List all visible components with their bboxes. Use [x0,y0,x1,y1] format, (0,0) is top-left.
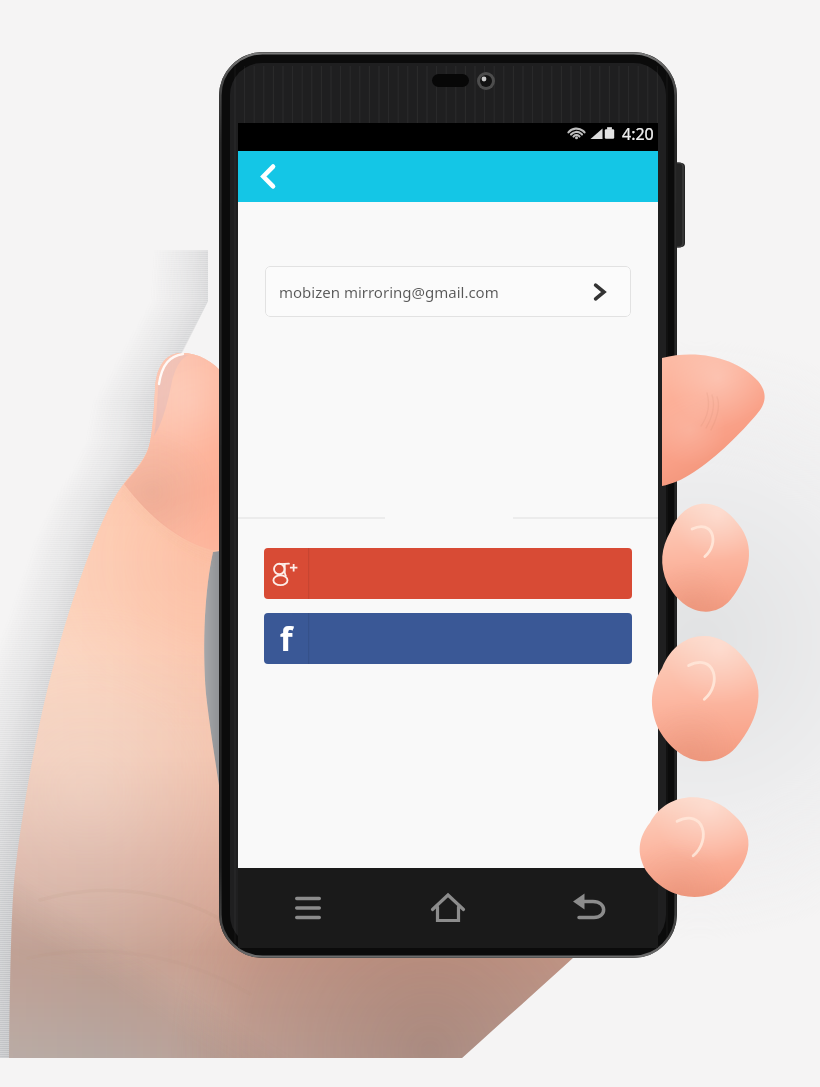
button[interactable]: Recent apps [238,868,378,948]
button[interactable]: mobizen mirroring@gmail.com [265,266,631,317]
button[interactable]: Back [518,868,658,948]
staticText: mobizen mirroring@gmail.com [279,282,499,302]
staticText: 4:20 [622,123,654,145]
button[interactable]: Home [378,868,518,948]
button[interactable] [264,548,632,599]
button[interactable]: Navigate up [242,151,296,202]
staticText: f [280,617,293,661]
button[interactable]: f [264,613,632,664]
